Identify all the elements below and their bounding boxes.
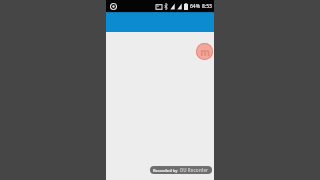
staticText: 64% xyxy=(190,3,200,10)
staticText: 8:53 xyxy=(202,3,212,10)
staticText: m xyxy=(200,45,210,59)
staticText: Recorded by xyxy=(153,168,178,173)
button[interactable]: Account badge xyxy=(196,43,213,60)
button[interactable] xyxy=(106,12,214,32)
staticText: DU Recorder xyxy=(180,167,209,173)
